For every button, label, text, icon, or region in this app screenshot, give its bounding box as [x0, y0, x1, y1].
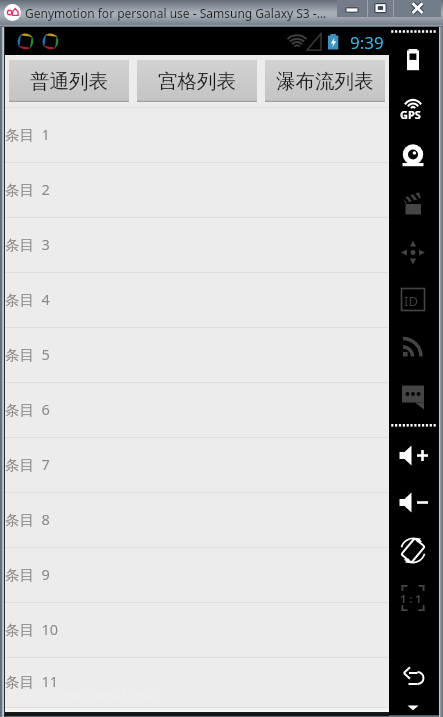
staticText: 条目 11 — [5, 671, 59, 691]
button[interactable]: 条目 6 — [5, 383, 389, 438]
button[interactable]: 条目 3 — [5, 218, 389, 273]
button[interactable]: Maximize — [368, 0, 393, 17]
staticText: Genymotion for personal use - Samsung Ga… — [25, 5, 327, 21]
button[interactable]: 条目 9 — [5, 548, 389, 603]
staticText: 条目 10 — [5, 619, 59, 639]
staticText: 条目 4 — [5, 289, 50, 309]
staticText: 条目 3 — [5, 234, 50, 254]
button[interactable]: 瀑布流列表 — [265, 60, 385, 102]
button[interactable]: 条目 2 — [5, 163, 389, 218]
button[interactable]: 条目 4 — [5, 273, 389, 328]
other: Genymotion tools — [389, 27, 439, 717]
staticText: 条目 2 — [5, 179, 50, 199]
staticText: 9:39 — [350, 31, 384, 54]
staticText: 1 : 1 — [400, 591, 422, 606]
button[interactable]: 宫格列表 — [137, 60, 257, 102]
button[interactable]: 条目 10 — [5, 603, 389, 658]
button[interactable]: 条目 1 — [5, 108, 389, 163]
staticText: GPS — [400, 107, 421, 122]
staticText: 宫格列表 — [158, 69, 236, 94]
staticText: 条目 8 — [5, 509, 50, 529]
staticText: 瀑布流列表 — [276, 69, 374, 94]
staticText: 条目 5 — [5, 344, 50, 364]
staticText: ID — [404, 292, 418, 310]
staticText: 条目 7 — [5, 454, 50, 474]
staticText: 条目 1 — [5, 124, 50, 144]
button[interactable]: 条目 8 — [5, 493, 389, 548]
button[interactable]: 条目 5 — [5, 328, 389, 383]
staticText: 普通列表 — [30, 69, 108, 94]
staticText: 条目 9 — [5, 564, 50, 584]
button[interactable]: 条目 7 — [5, 438, 389, 493]
button[interactable]: Close — [394, 0, 441, 17]
button[interactable]: Minimize — [337, 0, 367, 17]
staticText: free for personal use — [8, 684, 155, 704]
staticText: 条目 6 — [5, 399, 50, 419]
button[interactable]: 普通列表 — [9, 60, 129, 102]
button[interactable]: 条目 11 — [5, 658, 389, 708]
